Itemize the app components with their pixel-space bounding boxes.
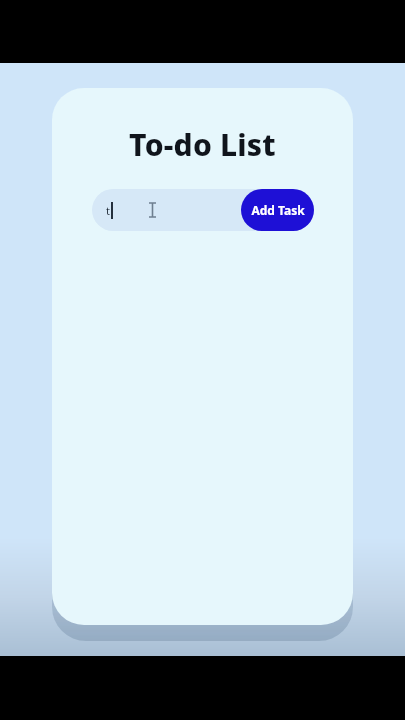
button[interactable]: t	[92, 189, 314, 231]
staticText: t	[106, 203, 110, 218]
staticText: To-do List	[52, 124, 353, 165]
button[interactable]: Add Task	[241, 189, 314, 231]
staticText: Add Task	[251, 202, 305, 218]
